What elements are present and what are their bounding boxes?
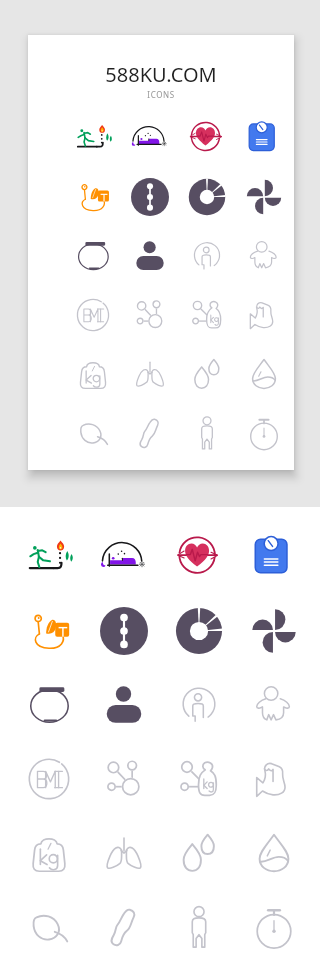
button[interactable]: Fitness band bbox=[11, 668, 86, 742]
button[interactable]: Profile bbox=[121, 226, 178, 285]
button[interactable]: Blood pressure bbox=[11, 594, 86, 668]
button[interactable]: Lungs bbox=[86, 816, 161, 890]
button[interactable]: Fitness band bbox=[64, 226, 121, 285]
button[interactable]: Hydration bbox=[236, 816, 311, 890]
button[interactable]: User info bbox=[161, 668, 236, 742]
button[interactable]: Joint bbox=[121, 403, 178, 462]
button[interactable]: BMI bbox=[11, 742, 86, 816]
button[interactable]: Profile bbox=[86, 668, 161, 742]
button[interactable]: Weight molecule bbox=[161, 742, 236, 816]
button[interactable]: Pinwheel bbox=[235, 167, 292, 226]
button[interactable]: Body bbox=[178, 403, 235, 462]
button[interactable]: Weight bbox=[64, 344, 121, 403]
button[interactable]: Joint bbox=[86, 890, 161, 964]
button[interactable]: Spine bbox=[86, 594, 161, 668]
staticText: ICONS bbox=[147, 89, 175, 100]
button[interactable]: Stomach bbox=[11, 890, 86, 964]
button[interactable]: Weight bbox=[11, 816, 86, 890]
button[interactable]: Timer bbox=[236, 890, 311, 964]
button[interactable]: Lungs bbox=[121, 344, 178, 403]
button[interactable]: Heart rate bbox=[161, 520, 236, 594]
button[interactable]: Molecule bbox=[86, 742, 161, 816]
button[interactable]: Child bbox=[236, 668, 311, 742]
button[interactable]: Weight molecule bbox=[178, 285, 235, 344]
button[interactable]: Timer bbox=[235, 403, 292, 462]
button[interactable]: Sleep bbox=[121, 108, 178, 167]
button[interactable]: Report bbox=[235, 108, 292, 167]
button[interactable]: Running bbox=[11, 520, 86, 594]
button[interactable]: User info bbox=[178, 226, 235, 285]
button[interactable]: Running bbox=[64, 108, 121, 167]
button[interactable]: BMI bbox=[64, 285, 121, 344]
staticText: 588KU.COM bbox=[105, 61, 217, 88]
button[interactable]: Pinwheel bbox=[236, 594, 311, 668]
button[interactable]: Child bbox=[235, 226, 292, 285]
button[interactable]: Spine bbox=[121, 167, 178, 226]
button[interactable]: Molecule bbox=[121, 285, 178, 344]
button[interactable]: Sleep bbox=[86, 520, 161, 594]
button[interactable]: Heart rate bbox=[178, 108, 235, 167]
button[interactable]: Water bbox=[161, 816, 236, 890]
button[interactable]: Statistics bbox=[161, 594, 236, 668]
button[interactable]: Water bbox=[178, 344, 235, 403]
button[interactable]: Muscle bbox=[235, 285, 292, 344]
button[interactable]: Statistics bbox=[178, 167, 235, 226]
button[interactable]: Hydration bbox=[235, 344, 292, 403]
button[interactable]: Blood pressure bbox=[64, 167, 121, 226]
button[interactable]: Body bbox=[161, 890, 236, 964]
button[interactable]: Muscle bbox=[236, 742, 311, 816]
button[interactable]: Stomach bbox=[64, 403, 121, 462]
button[interactable]: Report bbox=[236, 520, 311, 594]
